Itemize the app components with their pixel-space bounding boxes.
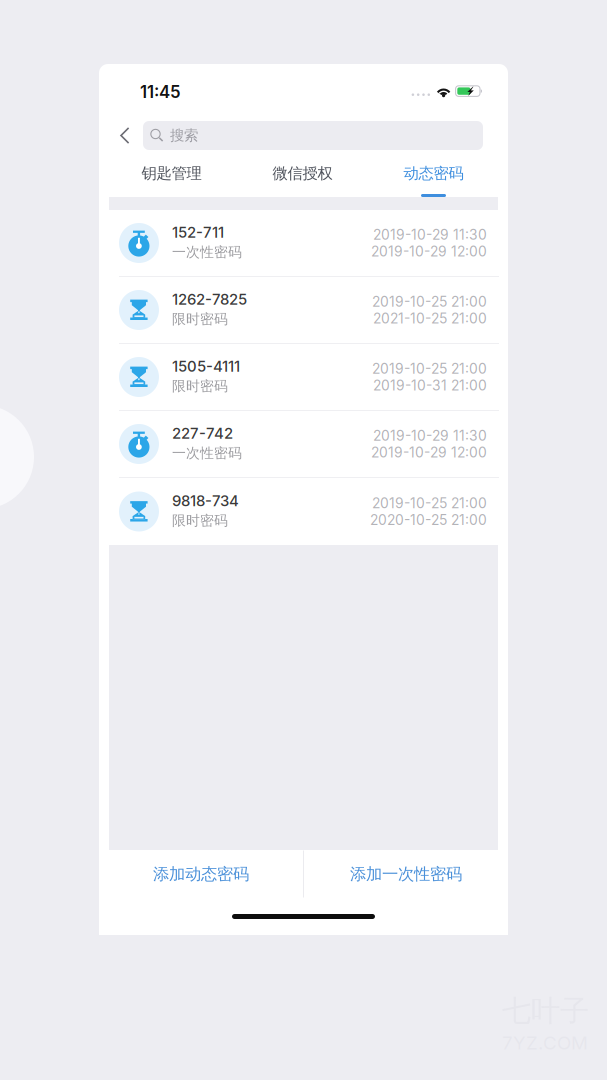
button[interactable]: 227-742 xyxy=(99,411,508,478)
staticText: 2019-10-29 12:00 xyxy=(371,243,487,260)
staticText: 一次性密码 xyxy=(172,444,242,462)
staticText: 2019-10-29 11:30 xyxy=(373,226,487,243)
staticText: 227-742 xyxy=(172,424,233,442)
button[interactable]: Back xyxy=(113,120,136,150)
staticText: 2019-10-29 11:30 xyxy=(373,427,487,444)
button[interactable]: 添加动态密码 xyxy=(99,850,303,898)
staticText: 微信授权 xyxy=(272,164,332,183)
staticText: 一次性密码 xyxy=(172,243,242,261)
button[interactable]: 微信授权 xyxy=(237,155,368,197)
staticText: 2019-10-25 21:00 xyxy=(372,495,487,511)
staticText: 限时密码 xyxy=(172,512,228,529)
button[interactable]: 钥匙管理 xyxy=(106,155,237,197)
staticText: 9818-734 xyxy=(172,492,239,510)
button[interactable]: 动态密码 xyxy=(368,155,499,197)
staticText: 动态密码 xyxy=(403,164,463,183)
button[interactable]: 1505-4111 xyxy=(99,344,508,411)
staticText: 钥匙管理 xyxy=(141,164,201,183)
button[interactable]: 添加一次性密码 xyxy=(304,850,508,898)
staticText: 添加一次性密码 xyxy=(350,864,462,884)
staticText: 限时密码 xyxy=(172,377,228,395)
button[interactable]: 1262-7825 xyxy=(99,277,508,344)
button[interactable]: 9818-734 xyxy=(99,478,508,545)
staticText: 1262-7825 xyxy=(172,290,247,308)
staticText: 11:45 xyxy=(140,82,181,102)
staticText: 1505-4111 xyxy=(172,357,240,375)
staticText: 搜索 xyxy=(170,126,198,144)
staticText: 2019-10-31 21:00 xyxy=(373,377,487,394)
staticText: 添加动态密码 xyxy=(153,864,249,884)
staticText: 2020-10-25 21:00 xyxy=(370,511,487,528)
staticText: 2021-10-25 21:00 xyxy=(373,310,487,327)
staticText: 152-711 xyxy=(172,223,224,241)
staticText: 限时密码 xyxy=(172,310,228,328)
staticText: 2019-10-25 21:00 xyxy=(372,360,487,377)
button[interactable]: 152-711 xyxy=(99,210,508,277)
button[interactable]: 搜索 xyxy=(143,121,483,150)
staticText: 2019-10-25 21:00 xyxy=(372,293,487,310)
staticText: 2019-10-29 12:00 xyxy=(371,444,487,461)
